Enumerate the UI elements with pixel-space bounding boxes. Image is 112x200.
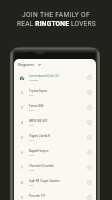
- button[interactable]: Download: [85, 118, 94, 127]
- button[interactable]: Download: [85, 88, 94, 97]
- staticText: 2: [21, 91, 23, 95]
- staticText: Pagani Zonda R: [29, 134, 51, 138]
- staticText: Lorem Ipsum Dolor Sit: [29, 74, 59, 78]
- button[interactable]: Ringtones: [14, 59, 96, 70]
- staticText: 3:01: [29, 94, 34, 97]
- button[interactable]: Download: [85, 193, 94, 200]
- button[interactable]: 5: [14, 130, 96, 145]
- button[interactable]: Download: [85, 133, 94, 142]
- button[interactable]: 2: [14, 85, 96, 100]
- staticText: Porsche 911: [29, 194, 46, 198]
- button[interactable]: 4: [14, 115, 96, 130]
- staticText: Toyota Supra: [29, 89, 47, 93]
- staticText: Ringtones: [18, 63, 35, 67]
- button[interactable]: 8: [14, 175, 96, 190]
- button[interactable]: 7: [14, 160, 96, 175]
- button[interactable]: Download: [85, 148, 94, 157]
- staticText: 3:05: [29, 169, 34, 172]
- staticText: Audi R8 Coupe Quattro: [29, 179, 60, 183]
- button[interactable]: Download: [85, 178, 94, 187]
- button[interactable]: 6: [14, 145, 96, 160]
- staticText: 7: [21, 166, 23, 170]
- staticText: REAL RINGTONE LOVERS: [17, 20, 96, 28]
- staticText: 3:44: [29, 184, 34, 187]
- staticText: Ferrari 488: [29, 104, 44, 108]
- staticText: 3:07: [29, 124, 34, 127]
- button[interactable]: 3: [14, 100, 96, 115]
- button[interactable]: Lorem Ipsum Dolor Sit: [14, 70, 96, 85]
- staticText: BMW M4 G82: [29, 119, 48, 123]
- staticText: 2:52: [29, 109, 34, 112]
- staticText: 5: [21, 136, 23, 140]
- staticText: 2:44: [29, 139, 34, 142]
- staticText: Bugatti Veyron: [29, 149, 49, 153]
- button[interactable]: Download: [85, 103, 94, 112]
- staticText: 4: [21, 121, 23, 125]
- staticText: 9: [21, 196, 23, 200]
- staticText: 6: [21, 151, 23, 155]
- button[interactable]: Download: [85, 163, 94, 172]
- staticText: 4:20: [29, 154, 34, 157]
- button[interactable]: 9: [14, 190, 96, 200]
- staticText: JOIN THE FAMILY OF: [22, 11, 91, 19]
- button[interactable]: Download: [85, 73, 94, 82]
- staticText: 3: [21, 106, 23, 110]
- staticText: Chevrolet Corvette: [29, 164, 54, 168]
- staticText: 8: [21, 181, 23, 185]
- staticText: 5:09 Min: [29, 79, 39, 82]
